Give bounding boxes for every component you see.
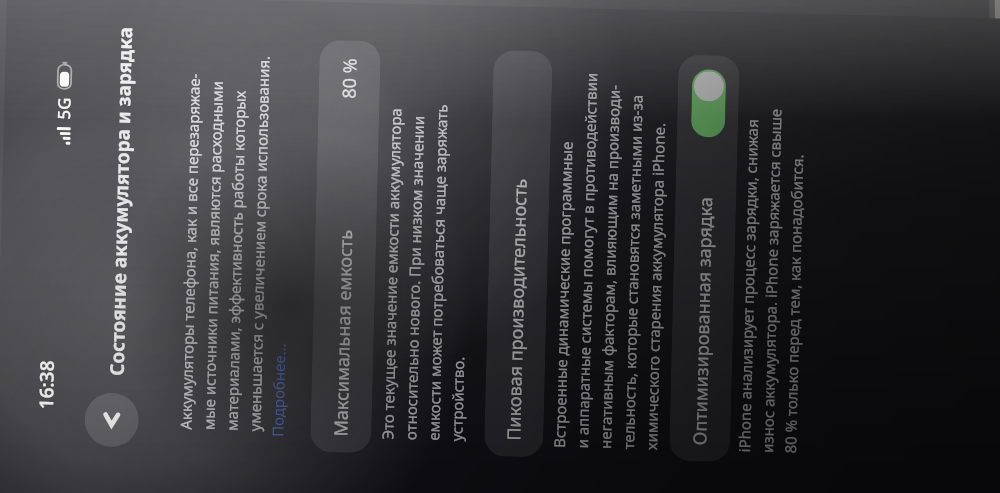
button[interactable]: Пиковая производительность	[484, 50, 553, 457]
staticText: 5G	[52, 96, 76, 120]
staticText: Встроенные динамические программные и ап…	[549, 72, 670, 450]
staticText: Аккумуляторы телефона, как и все перезар…	[175, 53, 274, 432]
staticText: 80 %	[337, 57, 363, 99]
staticText: 16:38	[33, 360, 60, 409]
button[interactable]: Максимальная емкость	[310, 40, 381, 453]
button[interactable]: Подробнее…	[267, 343, 290, 437]
staticText: iPhone анализирует процесс зарядки, сниж…	[734, 107, 808, 454]
staticText: Пиковая производительность	[501, 177, 533, 441]
button[interactable]: Оптимизированная зарядка	[669, 55, 740, 462]
staticText: Оптимизированная зарядка	[687, 196, 718, 445]
button[interactable]: Назад	[84, 392, 139, 447]
button[interactable]: Оптимизированная зарядка	[691, 69, 726, 138]
staticText: Это текущее значение емкости аккумулятор…	[377, 102, 474, 441]
staticText: Максимальная емкость	[328, 229, 358, 437]
staticText: Состояние аккумулятора и зарядка	[104, 26, 138, 376]
